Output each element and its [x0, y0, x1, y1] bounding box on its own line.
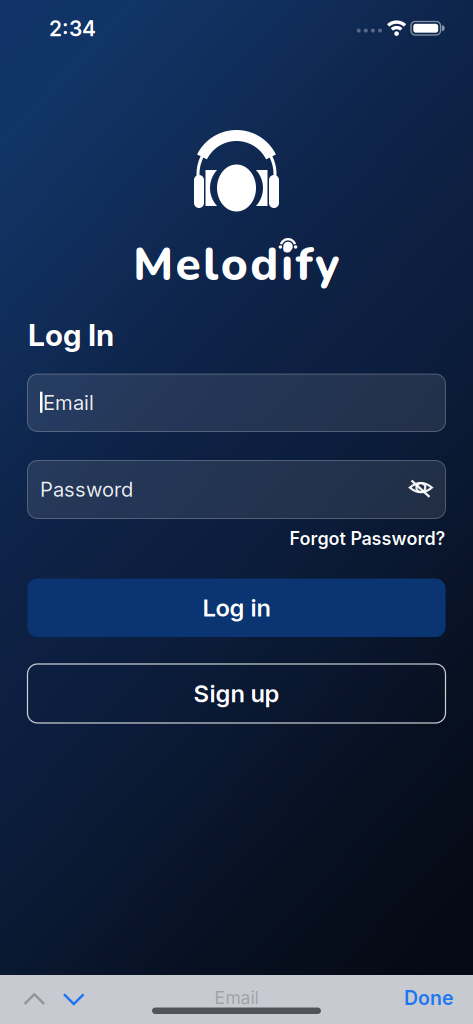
staticText: Forgot Password?	[289, 527, 445, 549]
staticText: Sign up	[193, 679, 279, 708]
button[interactable]: Forgot Password?	[27, 527, 445, 549]
button[interactable]: Sign up	[27, 664, 445, 723]
button[interactable]: Email	[27, 374, 445, 431]
button[interactable]: Next field	[62, 988, 85, 1010]
staticText: Email	[43, 390, 94, 415]
staticText: Email	[214, 987, 258, 1008]
button[interactable]: Previous field	[23, 988, 46, 1010]
staticText: Done	[404, 986, 454, 1010]
button[interactable]: Show password	[398, 466, 442, 510]
staticText: 2:34	[49, 16, 96, 41]
staticText: Melodify	[133, 233, 340, 296]
staticText: Password	[40, 477, 133, 502]
button[interactable]: Password	[27, 460, 445, 518]
button[interactable]: Email	[0, 987, 473, 1008]
button[interactable]: Done	[404, 986, 454, 1010]
button[interactable]: Log in	[27, 578, 445, 637]
staticText: Log In	[28, 317, 114, 353]
staticText: Log in	[202, 593, 270, 622]
